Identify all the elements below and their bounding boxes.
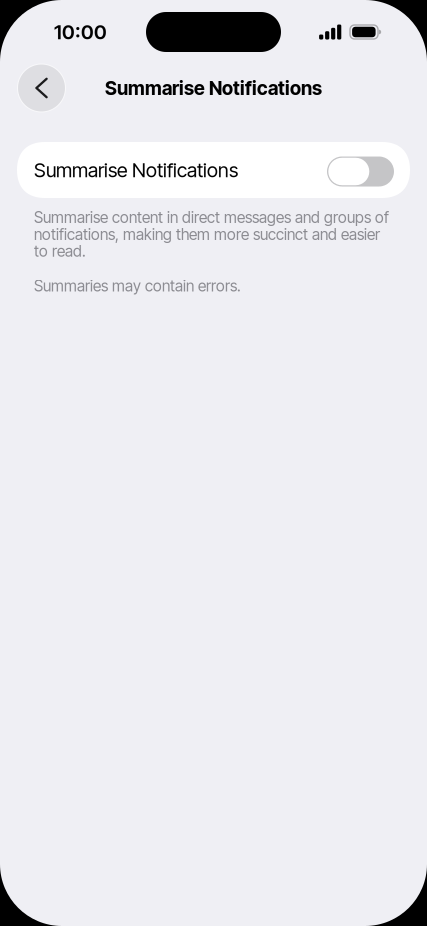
button[interactable]: Summarise Notifications: [17, 142, 410, 198]
staticText: Summarise content in direct messages and…: [34, 209, 389, 259]
button[interactable]: Back: [17, 63, 66, 112]
staticText: Summarise Notifications: [34, 158, 238, 182]
staticText: Summarise Notifications: [105, 76, 322, 99]
staticText: 10:00: [54, 20, 107, 44]
staticText: Summaries may contain errors.: [34, 277, 241, 294]
